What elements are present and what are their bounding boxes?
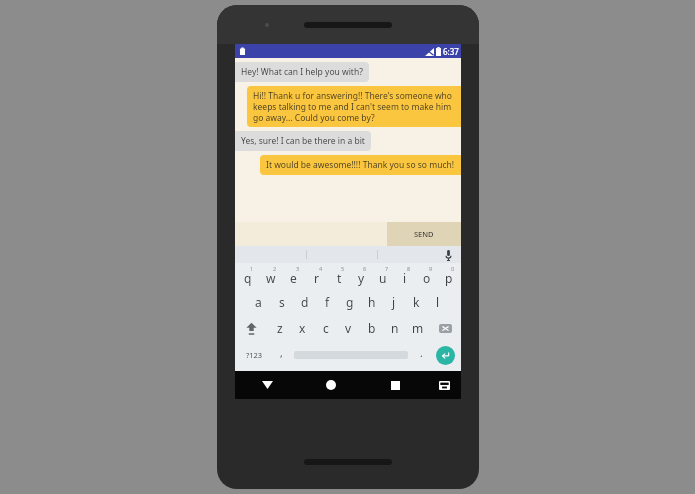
button[interactable]: Yes, sure! I can be there in a bit [235, 131, 371, 151]
button[interactable]: a [247, 289, 270, 315]
button[interactable]: Hi!! Thank u for answering!! There's som… [247, 86, 461, 127]
staticText: d [301, 294, 309, 310]
staticText: h [368, 294, 376, 310]
button[interactable]: f [316, 289, 339, 315]
staticText: f [325, 294, 330, 310]
staticText: ?123 [246, 350, 263, 360]
button[interactable]: 4 [305, 263, 328, 289]
button[interactable]: b [360, 315, 383, 341]
staticText: s [279, 294, 285, 310]
button[interactable]: 1 [236, 263, 259, 289]
button[interactable]: m [406, 315, 429, 341]
staticText: 9 [429, 265, 433, 272]
button[interactable]: j [383, 289, 405, 315]
button[interactable]: 3 [282, 263, 305, 289]
button[interactable]: 2 [259, 263, 282, 289]
button[interactable]: 9 [416, 263, 438, 289]
button[interactable]: Shift [235, 315, 268, 341]
button[interactable]: h [361, 289, 383, 315]
button[interactable]: s [270, 289, 293, 315]
button[interactable]: . [413, 341, 429, 369]
staticText: z [277, 320, 283, 336]
staticText: q [244, 270, 252, 286]
staticText: 6:37 [443, 46, 459, 57]
button[interactable]: g [339, 289, 361, 315]
button[interactable]: Hide keyboard [235, 371, 299, 399]
staticText: 3 [296, 265, 300, 272]
button[interactable]: v [337, 315, 360, 341]
staticText: a [255, 294, 262, 310]
button[interactable]: 5 [328, 263, 350, 289]
staticText: , [280, 346, 283, 360]
staticText: n [391, 320, 399, 336]
staticText: m [412, 320, 424, 336]
button[interactable]: Switch keyboard [427, 371, 461, 399]
button[interactable]: c [314, 315, 337, 341]
button[interactable]: 7 [372, 263, 394, 289]
button[interactable]: SEND [387, 222, 461, 246]
button[interactable]: , [273, 341, 289, 369]
staticText: 1 [250, 265, 254, 272]
button[interactable]: z [268, 315, 291, 341]
staticText: y [358, 270, 365, 286]
staticText: r [314, 270, 319, 286]
button[interactable]: l [427, 289, 449, 315]
staticText: k [413, 294, 420, 310]
staticText: 6 [363, 265, 367, 272]
staticText: i [403, 270, 407, 286]
staticText: . [420, 346, 423, 360]
button[interactable]: It would be awesome!!!! Thank you so so … [260, 155, 461, 175]
button[interactable]: 0 [438, 263, 460, 289]
staticText: 5 [341, 265, 345, 272]
staticText: o [423, 270, 431, 286]
staticText: p [445, 270, 453, 286]
button[interactable]: 8 [394, 263, 416, 289]
staticText: 2 [273, 265, 277, 272]
button[interactable]: x [291, 315, 314, 341]
button[interactable]: Backspace [429, 315, 461, 341]
staticText: j [392, 294, 396, 310]
button[interactable]: Space [289, 341, 413, 369]
staticText: x [299, 320, 306, 336]
staticText: g [346, 294, 354, 310]
button[interactable]: Home [299, 371, 363, 399]
button[interactable]: n [383, 315, 406, 341]
button[interactable]: d [293, 289, 316, 315]
staticText: 7 [385, 265, 389, 272]
staticText: e [290, 270, 297, 286]
button[interactable]: Voice input [441, 248, 455, 262]
button[interactable]: k [405, 289, 427, 315]
staticText: 4 [319, 265, 323, 272]
button[interactable]: 6 [350, 263, 372, 289]
button[interactable]: Enter [436, 346, 455, 365]
staticText: v [345, 320, 352, 336]
staticText: Yes, sure! I can be there in a bit [241, 135, 365, 147]
staticText: c [323, 320, 329, 336]
staticText: l [436, 294, 440, 310]
staticText: Hi!! Thank u for answering!! There's som… [253, 90, 455, 123]
staticText: w [266, 270, 276, 286]
button[interactable]: Recents [363, 371, 427, 399]
staticText: 0 [451, 265, 455, 272]
staticText: b [368, 320, 376, 336]
staticText: SEND [414, 229, 434, 239]
staticText: Hey! What can I help you with? [241, 66, 363, 78]
staticText: It would be awesome!!!! Thank you so so … [266, 159, 455, 171]
button[interactable]: Hey! What can I help you with? [235, 62, 369, 82]
button[interactable]: ?123 [235, 341, 273, 369]
staticText: 8 [407, 265, 411, 272]
staticText: u [379, 270, 387, 286]
staticText: t [337, 270, 342, 286]
